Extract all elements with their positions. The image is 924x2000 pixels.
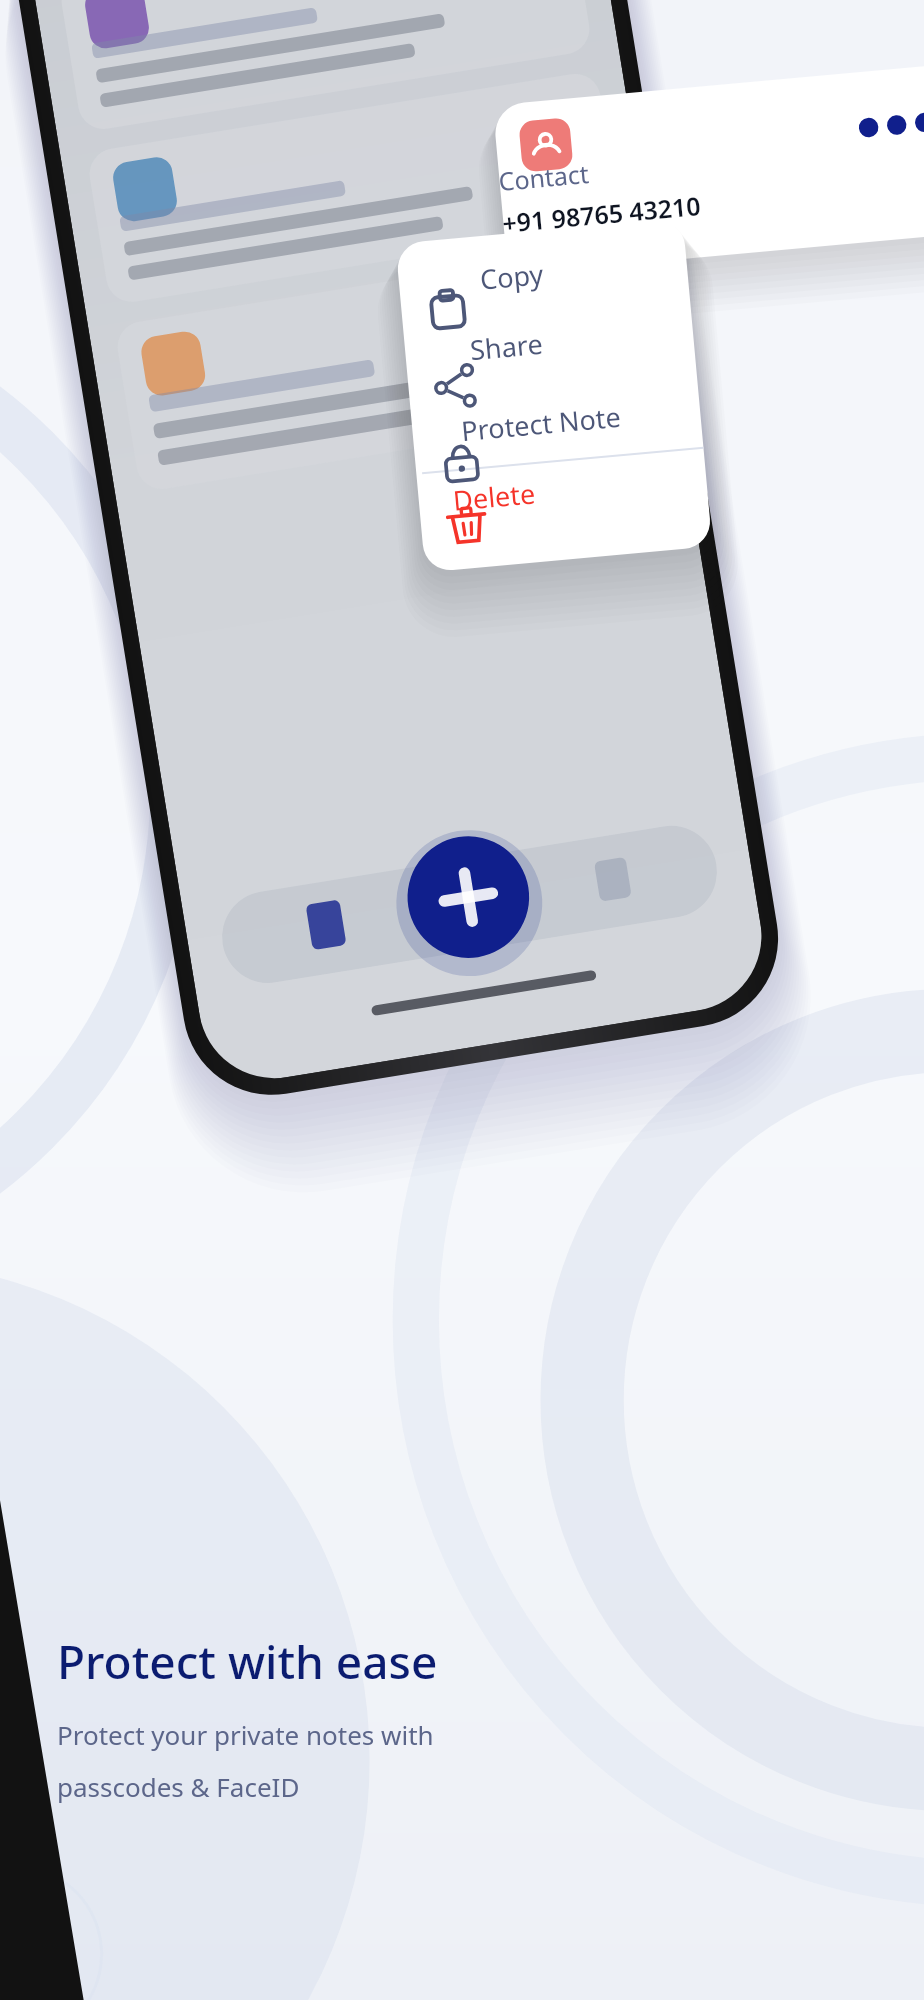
staticText: Protect Note <box>460 398 622 449</box>
button[interactable]: Contact <box>493 144 706 242</box>
staticText: Protect your private notes with <box>57 1717 434 1752</box>
button[interactable]: Protect Note <box>453 393 629 454</box>
staticText: Delete <box>451 474 537 519</box>
button[interactable]: Delete <box>445 470 544 523</box>
button[interactable]: Share <box>462 320 551 373</box>
staticText: passcodes & FaceID <box>57 1769 300 1804</box>
button[interactable]: Copy <box>472 251 552 302</box>
staticText: Copy <box>478 255 546 298</box>
staticText: Contact <box>497 156 591 198</box>
staticText: Share <box>468 325 545 368</box>
staticText: +91 98765 43210 <box>501 188 702 240</box>
staticText: Protect with ease <box>57 1630 438 1693</box>
